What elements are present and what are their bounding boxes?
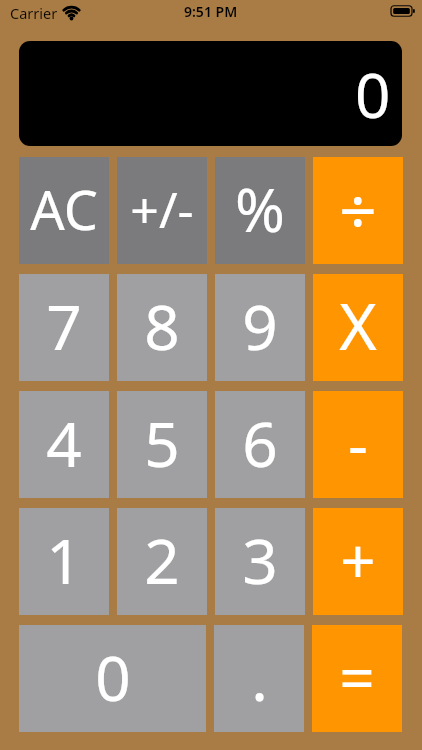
button[interactable]: ÷ — [313, 157, 403, 264]
staticText: 2 — [144, 518, 180, 602]
button[interactable]: % — [215, 157, 305, 264]
staticText: AC — [30, 172, 98, 246]
staticText: 4 — [46, 401, 82, 485]
staticText: = — [339, 635, 375, 719]
staticText: Carrier — [10, 3, 58, 23]
staticText: 8 — [144, 284, 180, 368]
staticText: 3 — [242, 518, 278, 602]
staticText: 9:51 PM — [184, 2, 238, 21]
button[interactable]: AC — [19, 157, 109, 264]
button[interactable]: 6 — [215, 391, 305, 498]
button[interactable]: X — [313, 274, 403, 381]
button[interactable]: +/- — [117, 157, 207, 264]
staticText: - — [348, 401, 368, 485]
button[interactable]: . — [214, 625, 304, 732]
button[interactable]: - — [313, 391, 403, 498]
button[interactable]: 3 — [215, 508, 305, 615]
staticText: . — [251, 635, 268, 719]
staticText: ÷ — [339, 164, 377, 254]
staticText: 7 — [46, 284, 82, 368]
button[interactable]: 1 — [19, 508, 109, 615]
button[interactable]: 7 — [19, 274, 109, 381]
staticText: + — [340, 518, 376, 602]
button[interactable]: 2 — [117, 508, 207, 615]
staticText: 9 — [242, 284, 278, 368]
staticText: % — [235, 168, 285, 250]
button[interactable]: 9 — [215, 274, 305, 381]
staticText: X — [339, 282, 377, 369]
button[interactable]: 0 — [19, 625, 206, 732]
staticText: 0 — [95, 635, 131, 719]
staticText: 0 — [355, 52, 391, 136]
button[interactable]: = — [312, 625, 402, 732]
staticText: 6 — [242, 401, 278, 485]
staticText: 1 — [46, 518, 82, 602]
staticText: +/- — [130, 175, 194, 243]
button[interactable]: + — [313, 508, 403, 615]
button[interactable]: 8 — [117, 274, 207, 381]
button[interactable]: 5 — [117, 391, 207, 498]
button[interactable]: 4 — [19, 391, 109, 498]
staticText: 5 — [144, 401, 180, 485]
